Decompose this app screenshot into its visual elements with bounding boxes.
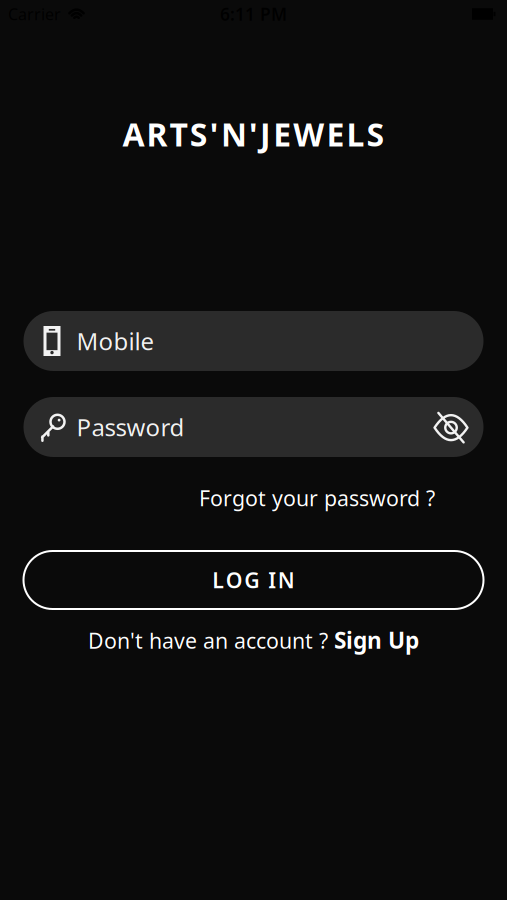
staticText: G bbox=[244, 566, 259, 594]
staticText: 6:11 PM bbox=[220, 2, 287, 25]
button[interactable]: Password bbox=[23, 397, 483, 457]
button[interactable]: Mobile bbox=[23, 311, 483, 371]
staticText: ' bbox=[210, 113, 219, 155]
staticText: Password bbox=[76, 411, 184, 443]
staticText: L bbox=[212, 566, 224, 594]
staticText: W bbox=[293, 113, 324, 155]
staticText: E bbox=[326, 113, 344, 155]
button[interactable]: L bbox=[23, 551, 483, 609]
staticText: Forgot your password ? bbox=[199, 484, 435, 512]
button[interactable]: Don't have an account ? Sign Up bbox=[88, 625, 419, 655]
staticText: Don't have an account ? Sign Up bbox=[88, 625, 419, 655]
staticText: A bbox=[122, 113, 144, 155]
staticText: E bbox=[273, 113, 291, 155]
staticText: I bbox=[268, 566, 276, 594]
button[interactable]: Show password bbox=[433, 411, 468, 443]
staticText: J bbox=[260, 113, 271, 155]
staticText: Mobile bbox=[76, 325, 154, 357]
staticText: N bbox=[278, 566, 295, 594]
staticText: L bbox=[346, 113, 364, 155]
staticText: O bbox=[226, 566, 243, 594]
button[interactable]: Forgot your password ? bbox=[199, 484, 435, 512]
staticText: T bbox=[170, 113, 188, 155]
staticText: S bbox=[367, 113, 385, 155]
staticText: ' bbox=[249, 113, 258, 155]
staticText: S bbox=[190, 113, 208, 155]
staticText: R bbox=[146, 113, 167, 155]
staticText: N bbox=[221, 113, 247, 155]
